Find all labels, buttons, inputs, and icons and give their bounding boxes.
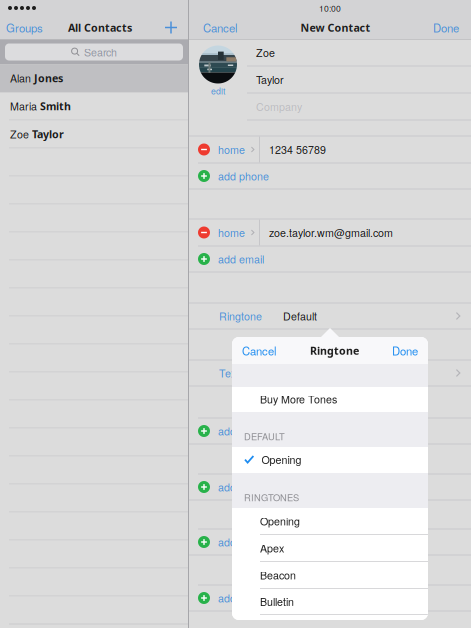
staticText: Text Tone	[219, 365, 266, 381]
button[interactable]: Cancel	[189, 16, 238, 39]
button[interactable]: add email	[189, 245, 471, 272]
button[interactable]: Add contact	[157, 16, 188, 39]
staticText: All Contacts	[68, 20, 132, 35]
staticText: RINGTONES	[244, 491, 299, 504]
button[interactable]: home	[189, 135, 471, 162]
staticText: New Contact	[300, 20, 370, 35]
staticText: Default	[283, 308, 317, 324]
button[interactable]: Buy More Tones	[232, 387, 428, 412]
staticText: 10:00	[319, 2, 341, 14]
button[interactable]: Apex	[232, 535, 428, 562]
staticText: zoe.taylor.wm@gmail.com	[269, 225, 393, 240]
staticText: DEFAULT	[244, 430, 285, 443]
staticText: Company	[256, 99, 302, 114]
staticText: edit	[211, 84, 225, 97]
button[interactable]: home	[189, 218, 471, 245]
staticText: Groups	[6, 19, 43, 36]
button[interactable]: Groups	[0, 16, 43, 39]
staticText: add phone	[218, 168, 269, 184]
staticText: Opening	[260, 513, 300, 529]
staticText: add address	[218, 479, 276, 495]
staticText: add birthday	[218, 534, 277, 550]
button[interactable]: Bulletin	[232, 589, 428, 615]
button[interactable]: edit	[211, 84, 225, 97]
staticText: Buy More Tones	[260, 391, 337, 407]
staticText: Done	[433, 19, 459, 36]
staticText: Zoe	[10, 126, 32, 142]
staticText: 1234 56789	[269, 142, 326, 157]
staticText: Done	[392, 342, 418, 359]
staticText: add url	[218, 423, 251, 439]
button[interactable]: add address	[189, 473, 471, 500]
button[interactable]: Beacon	[232, 562, 428, 589]
staticText: Maria	[10, 98, 40, 114]
staticText: add email	[218, 251, 264, 267]
button[interactable]: Done	[433, 16, 471, 39]
staticText: home	[218, 225, 245, 240]
button[interactable]: add birthday	[189, 528, 471, 555]
staticText: Bulletin	[260, 594, 294, 609]
button[interactable]: Cancel	[232, 337, 277, 364]
button[interactable]: Ringtone	[189, 302, 471, 329]
button[interactable]: Done	[392, 337, 428, 364]
button[interactable]: add phone	[189, 162, 471, 189]
button[interactable]: add related name	[189, 584, 471, 611]
button[interactable]: Search	[0, 39, 188, 64]
button[interactable]: Alan	[0, 64, 188, 92]
button[interactable]: Opening	[232, 447, 428, 473]
staticText: Taylor	[32, 127, 64, 141]
staticText: Cancel	[242, 342, 277, 359]
staticText: Alan	[10, 70, 34, 86]
staticText: Jones	[34, 71, 63, 85]
staticText: home	[218, 142, 245, 157]
staticText: Opening	[261, 452, 301, 467]
button[interactable]: Text Tone	[189, 359, 471, 386]
staticText: Cancel	[203, 19, 238, 36]
staticText: Ringtone	[219, 308, 262, 324]
staticText: Beacon	[260, 567, 296, 583]
button[interactable]: add url	[189, 417, 471, 444]
button[interactable]: Maria	[0, 92, 188, 120]
staticText: Apex	[260, 540, 284, 556]
button[interactable]: Opening	[232, 508, 428, 535]
staticText: Search	[84, 44, 117, 60]
staticText: Ringtone	[310, 343, 359, 358]
staticText: Zoe	[256, 45, 275, 60]
staticText: Smith	[40, 99, 71, 113]
button[interactable]: Zoe	[0, 120, 188, 148]
staticText: add related name	[218, 590, 301, 606]
staticText: Taylor	[256, 72, 284, 87]
